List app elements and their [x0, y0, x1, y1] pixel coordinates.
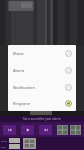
staticText: Set a sound for your alarm [23, 117, 61, 121]
button[interactable]: Play [21, 125, 34, 135]
button[interactable]: Previous [3, 125, 16, 135]
button[interactable]: Preview [23, 138, 36, 149]
button[interactable]: Music [8, 45, 76, 62]
staticText: Start [1, 139, 7, 142]
button[interactable]: Option [70, 125, 81, 135]
button[interactable]: Ringtone [8, 96, 76, 111]
button[interactable]: Next [39, 125, 52, 135]
staticText: Alarm [13, 68, 25, 73]
staticText: Ringtone [13, 101, 31, 106]
staticText: Music [13, 51, 24, 56]
staticText: End [1, 145, 6, 148]
staticText: Notification [13, 85, 35, 90]
button[interactable]: Notification [8, 79, 76, 96]
button[interactable]: Option [57, 125, 68, 135]
button[interactable]: Alarm [8, 62, 76, 79]
